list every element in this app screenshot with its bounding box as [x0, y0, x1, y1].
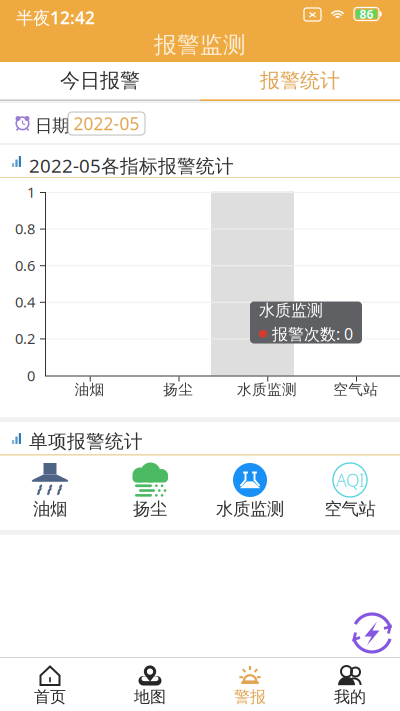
staticText: 单项报警统计 [29, 430, 143, 453]
button[interactable]: 刷新 [347, 612, 397, 654]
button[interactable]: 我的 [300, 658, 400, 711]
staticText: 油烟 [33, 498, 67, 520]
staticText: 0.6 [15, 255, 35, 275]
staticText: 2022-05 [73, 112, 139, 135]
button[interactable]: 水质监测 [200, 456, 300, 530]
staticText: 首页 [34, 687, 66, 707]
staticText: 2022-05各指标报警统计 [29, 153, 234, 178]
staticText: 半夜12:42 [16, 6, 95, 29]
staticText: 0.2 [15, 329, 35, 348]
staticText: 警报 [234, 687, 266, 707]
staticText: 0.8 [15, 219, 35, 238]
staticText: 空气站 [324, 498, 375, 520]
staticText: 油烟 [74, 380, 104, 398]
staticText: 我的 [334, 687, 366, 707]
button[interactable]: 地图 [100, 658, 200, 711]
button[interactable]: 首页 [0, 658, 100, 711]
button[interactable]: AQI [300, 456, 400, 530]
staticText: 0.4 [15, 292, 35, 312]
staticText: 水质监测 [237, 380, 297, 398]
button[interactable]: 报警统计 [200, 62, 400, 99]
staticText: 报警次数: 0 [272, 323, 353, 344]
staticText: 报警监测 [154, 31, 246, 59]
staticText: 今日报警 [60, 68, 140, 93]
staticText: 空气站 [333, 380, 378, 398]
staticText: 1 [27, 182, 35, 202]
staticText: AQI [336, 468, 364, 491]
button[interactable]: 今日报警 [0, 62, 200, 99]
staticText: 扬尘 [133, 498, 167, 520]
staticText: 0 [27, 366, 35, 385]
staticText: 日期 [35, 115, 69, 136]
staticText: 扬尘 [163, 380, 193, 398]
button[interactable]: 油烟 [0, 456, 100, 530]
staticText: 水质监测 [259, 300, 323, 320]
staticText: 水质监测 [216, 498, 284, 520]
button[interactable]: 警报 [200, 658, 300, 711]
button[interactable]: 扬尘 [100, 456, 200, 530]
staticText: 86 [359, 6, 373, 22]
staticText: 报警统计 [260, 68, 340, 93]
staticText: 地图 [134, 687, 166, 707]
button[interactable]: 2022-05 [68, 112, 145, 135]
